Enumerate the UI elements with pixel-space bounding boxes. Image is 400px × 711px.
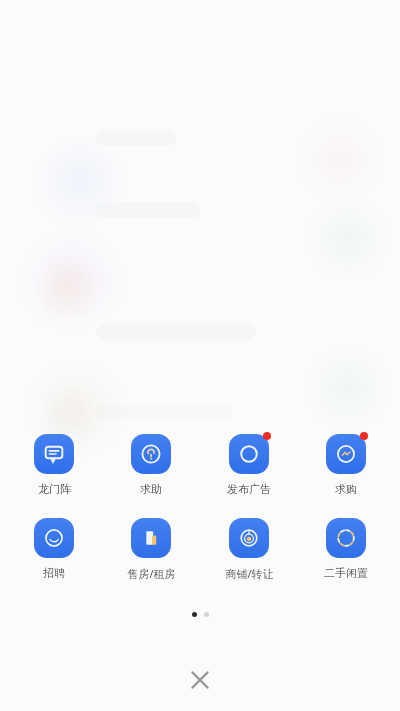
other: 龙门阵 bbox=[34, 434, 74, 474]
button[interactable]: 求助 bbox=[105, 432, 197, 496]
other: 招聘 bbox=[34, 518, 74, 558]
button[interactable]: 商铺/转让 bbox=[203, 516, 295, 581]
other: 售房/租房 bbox=[131, 518, 171, 558]
staticText: 发布广告 bbox=[227, 482, 271, 496]
button[interactable]: 招聘 bbox=[8, 516, 100, 580]
button[interactable]: 二手闲置 bbox=[300, 516, 392, 580]
other: 商铺/转让 bbox=[229, 518, 269, 558]
staticText: 求购 bbox=[335, 482, 357, 496]
button[interactable]: 龙门阵 bbox=[8, 432, 100, 496]
staticText: 招聘 bbox=[43, 566, 65, 580]
staticText: 售房/租房 bbox=[127, 566, 176, 581]
other: 求助 bbox=[131, 434, 171, 474]
staticText: 求助 bbox=[140, 482, 162, 496]
button[interactable]: Close bbox=[178, 658, 222, 702]
other: 发布广告 bbox=[229, 434, 269, 474]
other: 二手闲置 bbox=[326, 518, 366, 558]
button[interactable]: 发布广告 bbox=[203, 432, 295, 496]
staticText: 商铺/转让 bbox=[225, 566, 274, 581]
other: 求购 bbox=[326, 434, 366, 474]
staticText: 二手闲置 bbox=[324, 566, 368, 580]
button[interactable]: 售房/租房 bbox=[105, 516, 197, 581]
button[interactable]: 求购 bbox=[300, 432, 392, 496]
staticText: 龙门阵 bbox=[38, 482, 71, 496]
